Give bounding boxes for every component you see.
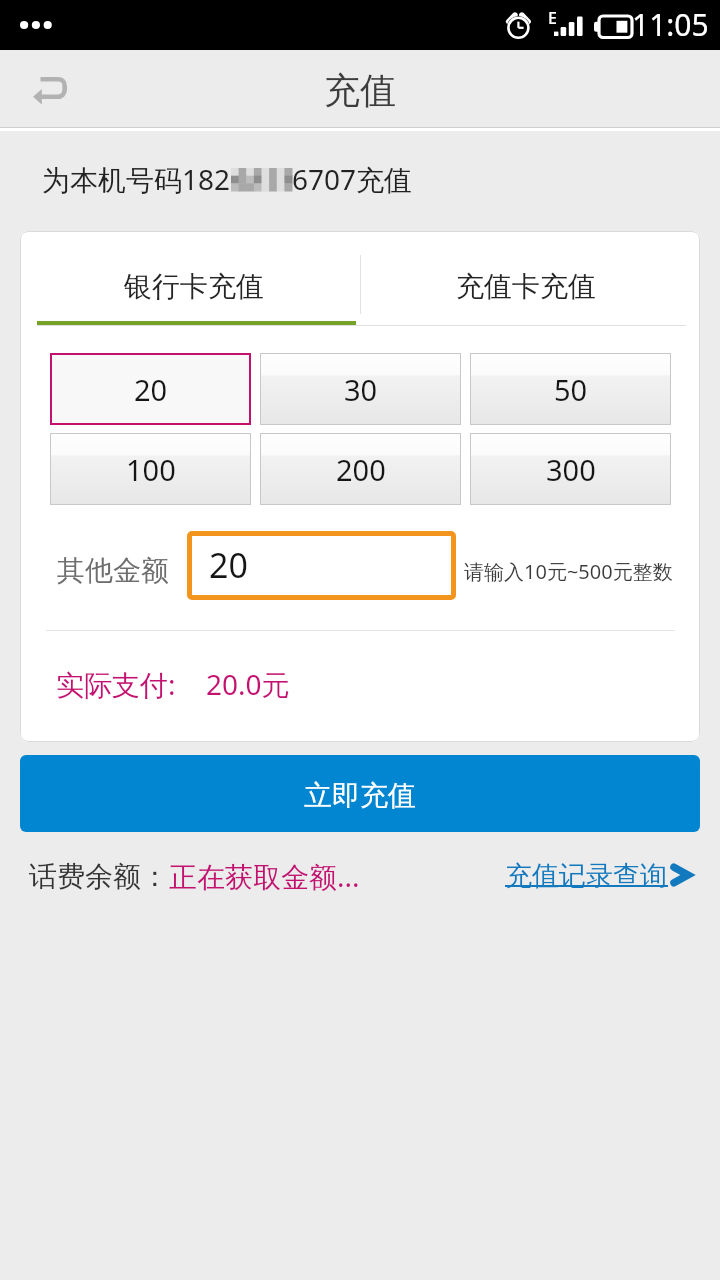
button[interactable]: 30	[260, 353, 461, 425]
staticText: 正在获取金额...	[169, 857, 360, 895]
staticText: 话费余额：	[29, 859, 169, 894]
staticText: 银行卡充值	[124, 269, 264, 304]
staticText: 充值记录查询	[505, 859, 667, 893]
button[interactable]: 立即充值	[20, 755, 700, 832]
button[interactable]: 充值卡充值	[360, 231, 700, 325]
button[interactable]: 20	[187, 531, 456, 600]
staticText: 实际支付:	[56, 665, 176, 703]
staticText: 20	[134, 370, 168, 409]
staticText: 其他金额	[57, 553, 169, 588]
staticText: 20	[209, 542, 248, 588]
button[interactable]: 300	[470, 433, 671, 505]
button[interactable]: 银行卡充值	[20, 231, 360, 325]
staticText: 充值	[324, 68, 396, 113]
staticText: 充值卡充值	[456, 269, 596, 304]
button[interactable]: 200	[260, 433, 461, 505]
staticText: 200	[336, 450, 386, 489]
staticText: 6707充值	[292, 160, 413, 198]
staticText: 300	[546, 450, 596, 489]
button[interactable]: 充值记录查询	[505, 859, 690, 893]
button[interactable]: 100	[50, 433, 251, 505]
staticText: 20.0元	[206, 665, 290, 703]
staticText: 30	[344, 370, 378, 409]
staticText: 50	[554, 370, 588, 409]
staticText: 为本机号码182	[42, 160, 231, 198]
button[interactable]: 50	[470, 353, 671, 425]
button[interactable]: 20	[50, 353, 251, 425]
staticText: 100	[126, 450, 176, 489]
staticText: 请输入10元~500元整数	[464, 558, 673, 585]
staticText: E	[548, 7, 557, 29]
button[interactable]: Back	[0, 50, 100, 127]
staticText: 11:05	[632, 4, 709, 45]
staticText: 立即充值	[304, 778, 416, 813]
